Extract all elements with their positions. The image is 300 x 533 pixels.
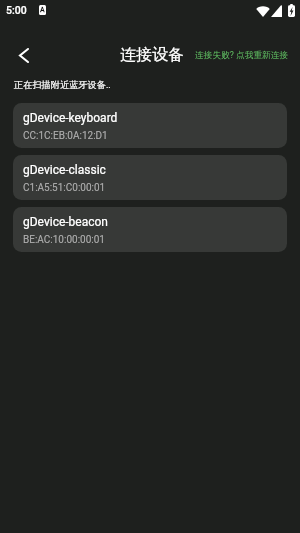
staticText: 5:00: [6, 4, 27, 16]
staticText: gDevice-beacon: [23, 215, 108, 229]
button[interactable]: Back: [0, 32, 46, 78]
staticText: A: [40, 6, 45, 14]
button[interactable]: gDevice-keyboard: [13, 103, 287, 148]
staticText: 正在扫描附近蓝牙设备..: [14, 79, 111, 91]
staticText: CC:1C:EB:0A:12:D1: [23, 130, 108, 142]
staticText: BE:AC:10:00:00:01: [23, 234, 105, 246]
staticText: gDevice-classic: [23, 163, 106, 177]
button[interactable]: gDevice-classic: [13, 155, 287, 200]
staticText: 连接失败? 点我重新连接: [195, 50, 289, 61]
button[interactable]: 连接失败? 点我重新连接: [191, 37, 300, 73]
staticText: gDevice-keyboard: [23, 111, 118, 125]
staticText: C1:A5:51:C0:00:01: [23, 182, 106, 194]
staticText: 连接设备: [120, 45, 184, 65]
button[interactable]: gDevice-beacon: [13, 207, 287, 252]
